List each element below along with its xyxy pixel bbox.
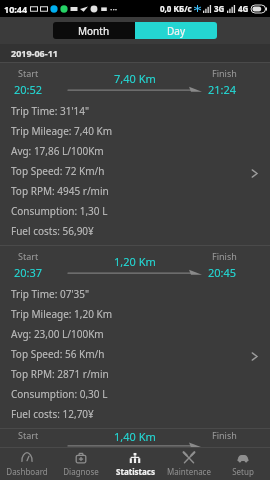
- staticText: Start: [18, 429, 39, 441]
- staticText: Finish: [212, 67, 237, 79]
- staticText: 4G: [238, 3, 249, 14]
- staticText: Fuel costs: 56,90¥: [11, 224, 94, 238]
- button[interactable]: Month: [53, 22, 135, 39]
- staticText: Month: [78, 24, 110, 38]
- button[interactable]: Start: [0, 246, 270, 428]
- other: Show trip details: [250, 352, 259, 361]
- staticText: 0,0 КБ/c: [160, 3, 192, 14]
- staticText: 10:44: [4, 3, 28, 15]
- staticText: 20:45: [208, 265, 237, 280]
- button[interactable]: Diagnose: [54, 448, 108, 480]
- staticText: Day: [167, 24, 186, 38]
- button[interactable]: Setup: [216, 448, 270, 480]
- staticText: Consumption: 0,30 L: [11, 387, 108, 401]
- staticText: Trip Mileage: 1,20 Km: [11, 307, 113, 321]
- staticText: Top Speed: 56 Km/h: [11, 347, 105, 361]
- staticText: Start: [18, 250, 39, 262]
- button[interactable]: Day: [135, 22, 217, 39]
- staticText: 20:52: [14, 82, 43, 97]
- staticText: Maintenace: [167, 466, 211, 477]
- staticText: Finish: [212, 250, 237, 262]
- other: Show trip details: [250, 169, 259, 178]
- staticText: Fuel costs: 12,70¥: [11, 407, 94, 421]
- staticText: ···: [110, 3, 118, 15]
- staticText: 1,40 Km: [114, 429, 156, 444]
- staticText: Top Speed: 72 Km/h: [11, 164, 105, 178]
- staticText: 1,20 Km: [114, 254, 156, 269]
- staticText: Avg: 23,00 L/100Km: [11, 327, 104, 341]
- button[interactable]: Maintenace: [162, 448, 216, 480]
- staticText: Finish: [212, 429, 237, 441]
- staticText: Start: [18, 67, 39, 79]
- staticText: Top RPM: 4945 r/min: [11, 184, 109, 198]
- staticText: 21:24: [208, 82, 237, 97]
- staticText: Trip Mileage: 7,40 Km: [11, 124, 113, 138]
- staticText: Trip Time: 31'14": [11, 104, 90, 118]
- staticText: Statistacs: [116, 466, 155, 477]
- staticText: 2019-06-11: [11, 47, 58, 59]
- staticText: Dashboard: [6, 466, 48, 477]
- staticText: Setup: [232, 466, 254, 477]
- button[interactable]: Dashboard: [0, 448, 54, 480]
- button[interactable]: Start: [0, 63, 270, 245]
- staticText: Avg: 17,86 L/100Km: [11, 144, 104, 158]
- button[interactable]: Statistacs: [108, 448, 162, 480]
- staticText: 20:37: [14, 265, 43, 280]
- staticText: Consumption: 1,30 L: [11, 204, 108, 218]
- staticText: Top RPM: 2871 r/min: [11, 367, 109, 381]
- staticText: Diagnose: [63, 466, 99, 477]
- staticText: Trip Time: 07'35": [11, 287, 90, 301]
- staticText: 3G: [214, 3, 225, 14]
- staticText: 7,40 Km: [114, 71, 156, 86]
